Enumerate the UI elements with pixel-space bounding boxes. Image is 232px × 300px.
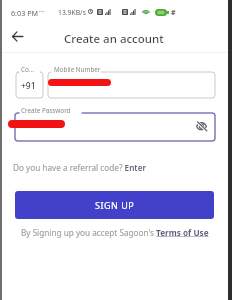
staticText: SIGN UP — [95, 199, 135, 211]
button[interactable]: SIGN UP — [15, 191, 214, 219]
button[interactable]: Back — [10, 29, 25, 44]
button[interactable]: By Signing up you accept Sagoon's Terms … — [21, 227, 209, 238]
staticText: # — [171, 8, 176, 18]
button[interactable]: Create Password — [15, 113, 215, 141]
staticText: Mobile Number — [54, 65, 101, 74]
staticText: 6:03 PM — [11, 8, 38, 18]
staticText: Create Password — [21, 106, 71, 115]
staticText: Do you have a referral code? Enter — [13, 162, 147, 173]
button[interactable]: Country code +91 — [16, 72, 43, 98]
staticText: Co... — [21, 65, 34, 74]
staticText: 13.9KB/s — [58, 8, 86, 17]
staticText: Create an account — [64, 31, 164, 47]
staticText: By Signing up you accept Sagoon's Terms … — [21, 227, 209, 238]
staticText: +91 — [21, 80, 36, 92]
button[interactable]: Show password — [193, 118, 209, 134]
button[interactable]: Do you have a referral code? Enter — [13, 162, 147, 173]
button[interactable]: Mobile Number — [48, 72, 215, 98]
staticText: ··· — [39, 7, 45, 17]
